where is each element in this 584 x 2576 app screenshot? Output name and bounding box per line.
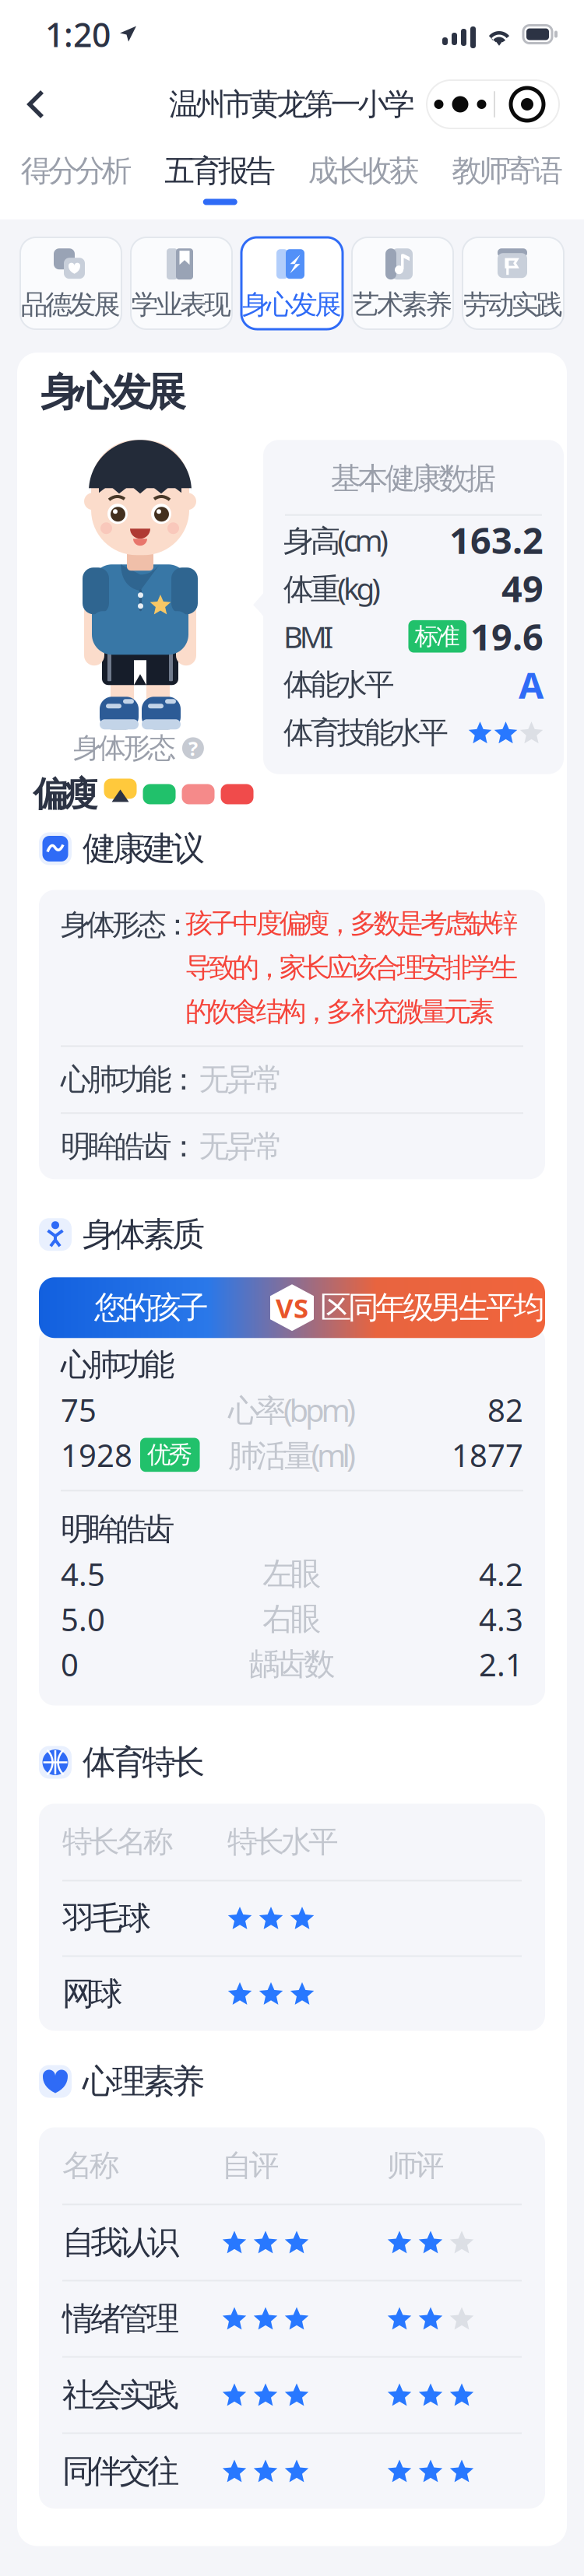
staticText: 163.2 — [449, 516, 544, 564]
staticText: 4.3 — [479, 1598, 523, 1640]
staticText: 49 — [501, 564, 544, 612]
staticText: 肺活量(ml) — [228, 1434, 356, 1475]
staticText: 5.0 — [61, 1598, 105, 1640]
staticText: 无异常 — [199, 1061, 283, 1098]
staticText: 网球 — [62, 1974, 122, 2014]
staticText: 4.5 — [61, 1553, 105, 1595]
staticText: A — [519, 660, 544, 709]
staticText: 特长名称 — [62, 1823, 174, 1860]
button[interactable]: 教师寄语 — [436, 140, 579, 219]
staticText: 情绪管理 — [62, 2299, 179, 2339]
staticText: 标准 — [415, 622, 460, 651]
staticText: 明眸皓齿： — [61, 1128, 199, 1165]
staticText: 左眼 — [263, 1555, 321, 1593]
staticText: BMI — [283, 616, 334, 656]
staticText: 品德发展 — [21, 288, 121, 321]
staticText: VS — [276, 1290, 308, 1326]
button[interactable]: 劳动实践 — [463, 237, 564, 329]
staticText: 基本健康数据 — [331, 460, 496, 497]
staticText: 师评 — [387, 2147, 444, 2184]
staticText: 学业表现 — [132, 288, 231, 321]
button[interactable]: 成长收获 — [292, 140, 436, 219]
staticText: 区同年级男生平均 — [320, 1289, 545, 1327]
staticText: 无异常 — [199, 1128, 283, 1165]
staticText: 右眼 — [263, 1600, 321, 1638]
staticText: 艺术素养 — [353, 288, 453, 321]
staticText: 心肺功能： — [61, 1061, 199, 1098]
staticText: 教师寄语 — [452, 153, 563, 190]
staticText: 身心发展 — [40, 368, 186, 417]
staticText: 自评 — [222, 2147, 279, 2184]
staticText: 体育特长 — [83, 1742, 205, 1783]
staticText: 身心发展 — [242, 288, 342, 321]
staticText: 成长收获 — [308, 153, 420, 190]
button[interactable]: 身心发展 — [241, 237, 343, 329]
staticText: 自我认识 — [62, 2223, 179, 2262]
staticText: 您的孩子 — [94, 1289, 208, 1327]
staticText: 名称 — [62, 2147, 120, 2184]
button[interactable]: Back — [0, 75, 62, 133]
staticText: 劳动实践 — [463, 288, 563, 321]
staticText: 优秀 — [147, 1440, 193, 1469]
staticText: 孩子中度偏瘦，多数是考虑缺锌导致的，家长应该合理安排学生的饮食结构，多补充微量元… — [185, 907, 518, 1028]
staticText: 身高(cm) — [283, 520, 389, 560]
staticText: 心理素养 — [83, 2061, 205, 2102]
button[interactable]: 艺术素养 — [352, 237, 453, 329]
staticText: 温州市黄龙第一小学 — [169, 86, 415, 123]
staticText: 体重(kg) — [283, 568, 381, 608]
staticText: 1877 — [452, 1434, 523, 1475]
button[interactable]: More — [427, 80, 559, 128]
staticText: 羽毛球 — [62, 1899, 151, 1938]
button[interactable]: 得分分析 — [5, 140, 148, 219]
button[interactable]: 五育报告 — [148, 140, 292, 219]
staticText: 健康建议 — [83, 828, 205, 869]
staticText: 4.2 — [479, 1553, 523, 1595]
staticText: 1928 — [61, 1434, 132, 1475]
staticText: 身体形态： — [61, 907, 192, 943]
staticText: 偏瘦 — [33, 773, 98, 815]
staticText: 同伴交往 — [62, 2452, 179, 2491]
staticText: 心率(bpm) — [228, 1389, 356, 1430]
staticText: ? — [188, 735, 198, 761]
button[interactable]: 学业表现 — [131, 237, 232, 329]
staticText: 19.6 — [470, 612, 544, 660]
staticText: 特长水平 — [227, 1823, 339, 1860]
staticText: 体能水平 — [283, 666, 395, 703]
staticText: 明眸皓齿 — [61, 1510, 175, 1548]
staticText: 社会实践 — [62, 2375, 179, 2415]
staticText: 体育技能水平 — [283, 714, 449, 751]
staticText: 75 — [61, 1389, 97, 1430]
staticText: 身体形态 — [73, 731, 176, 765]
button[interactable]: 品德发展 — [20, 237, 121, 329]
staticText: 2.1 — [479, 1644, 523, 1685]
staticText: 身体素质 — [83, 1214, 205, 1255]
staticText: 心肺功能 — [61, 1346, 175, 1384]
staticText: 1:20 — [45, 12, 111, 56]
staticText: 得分分析 — [21, 153, 132, 190]
staticText: 五育报告 — [165, 153, 276, 190]
staticText: 龋齿数 — [249, 1645, 335, 1683]
staticText: 82 — [487, 1389, 523, 1430]
staticText: 0 — [61, 1644, 79, 1685]
